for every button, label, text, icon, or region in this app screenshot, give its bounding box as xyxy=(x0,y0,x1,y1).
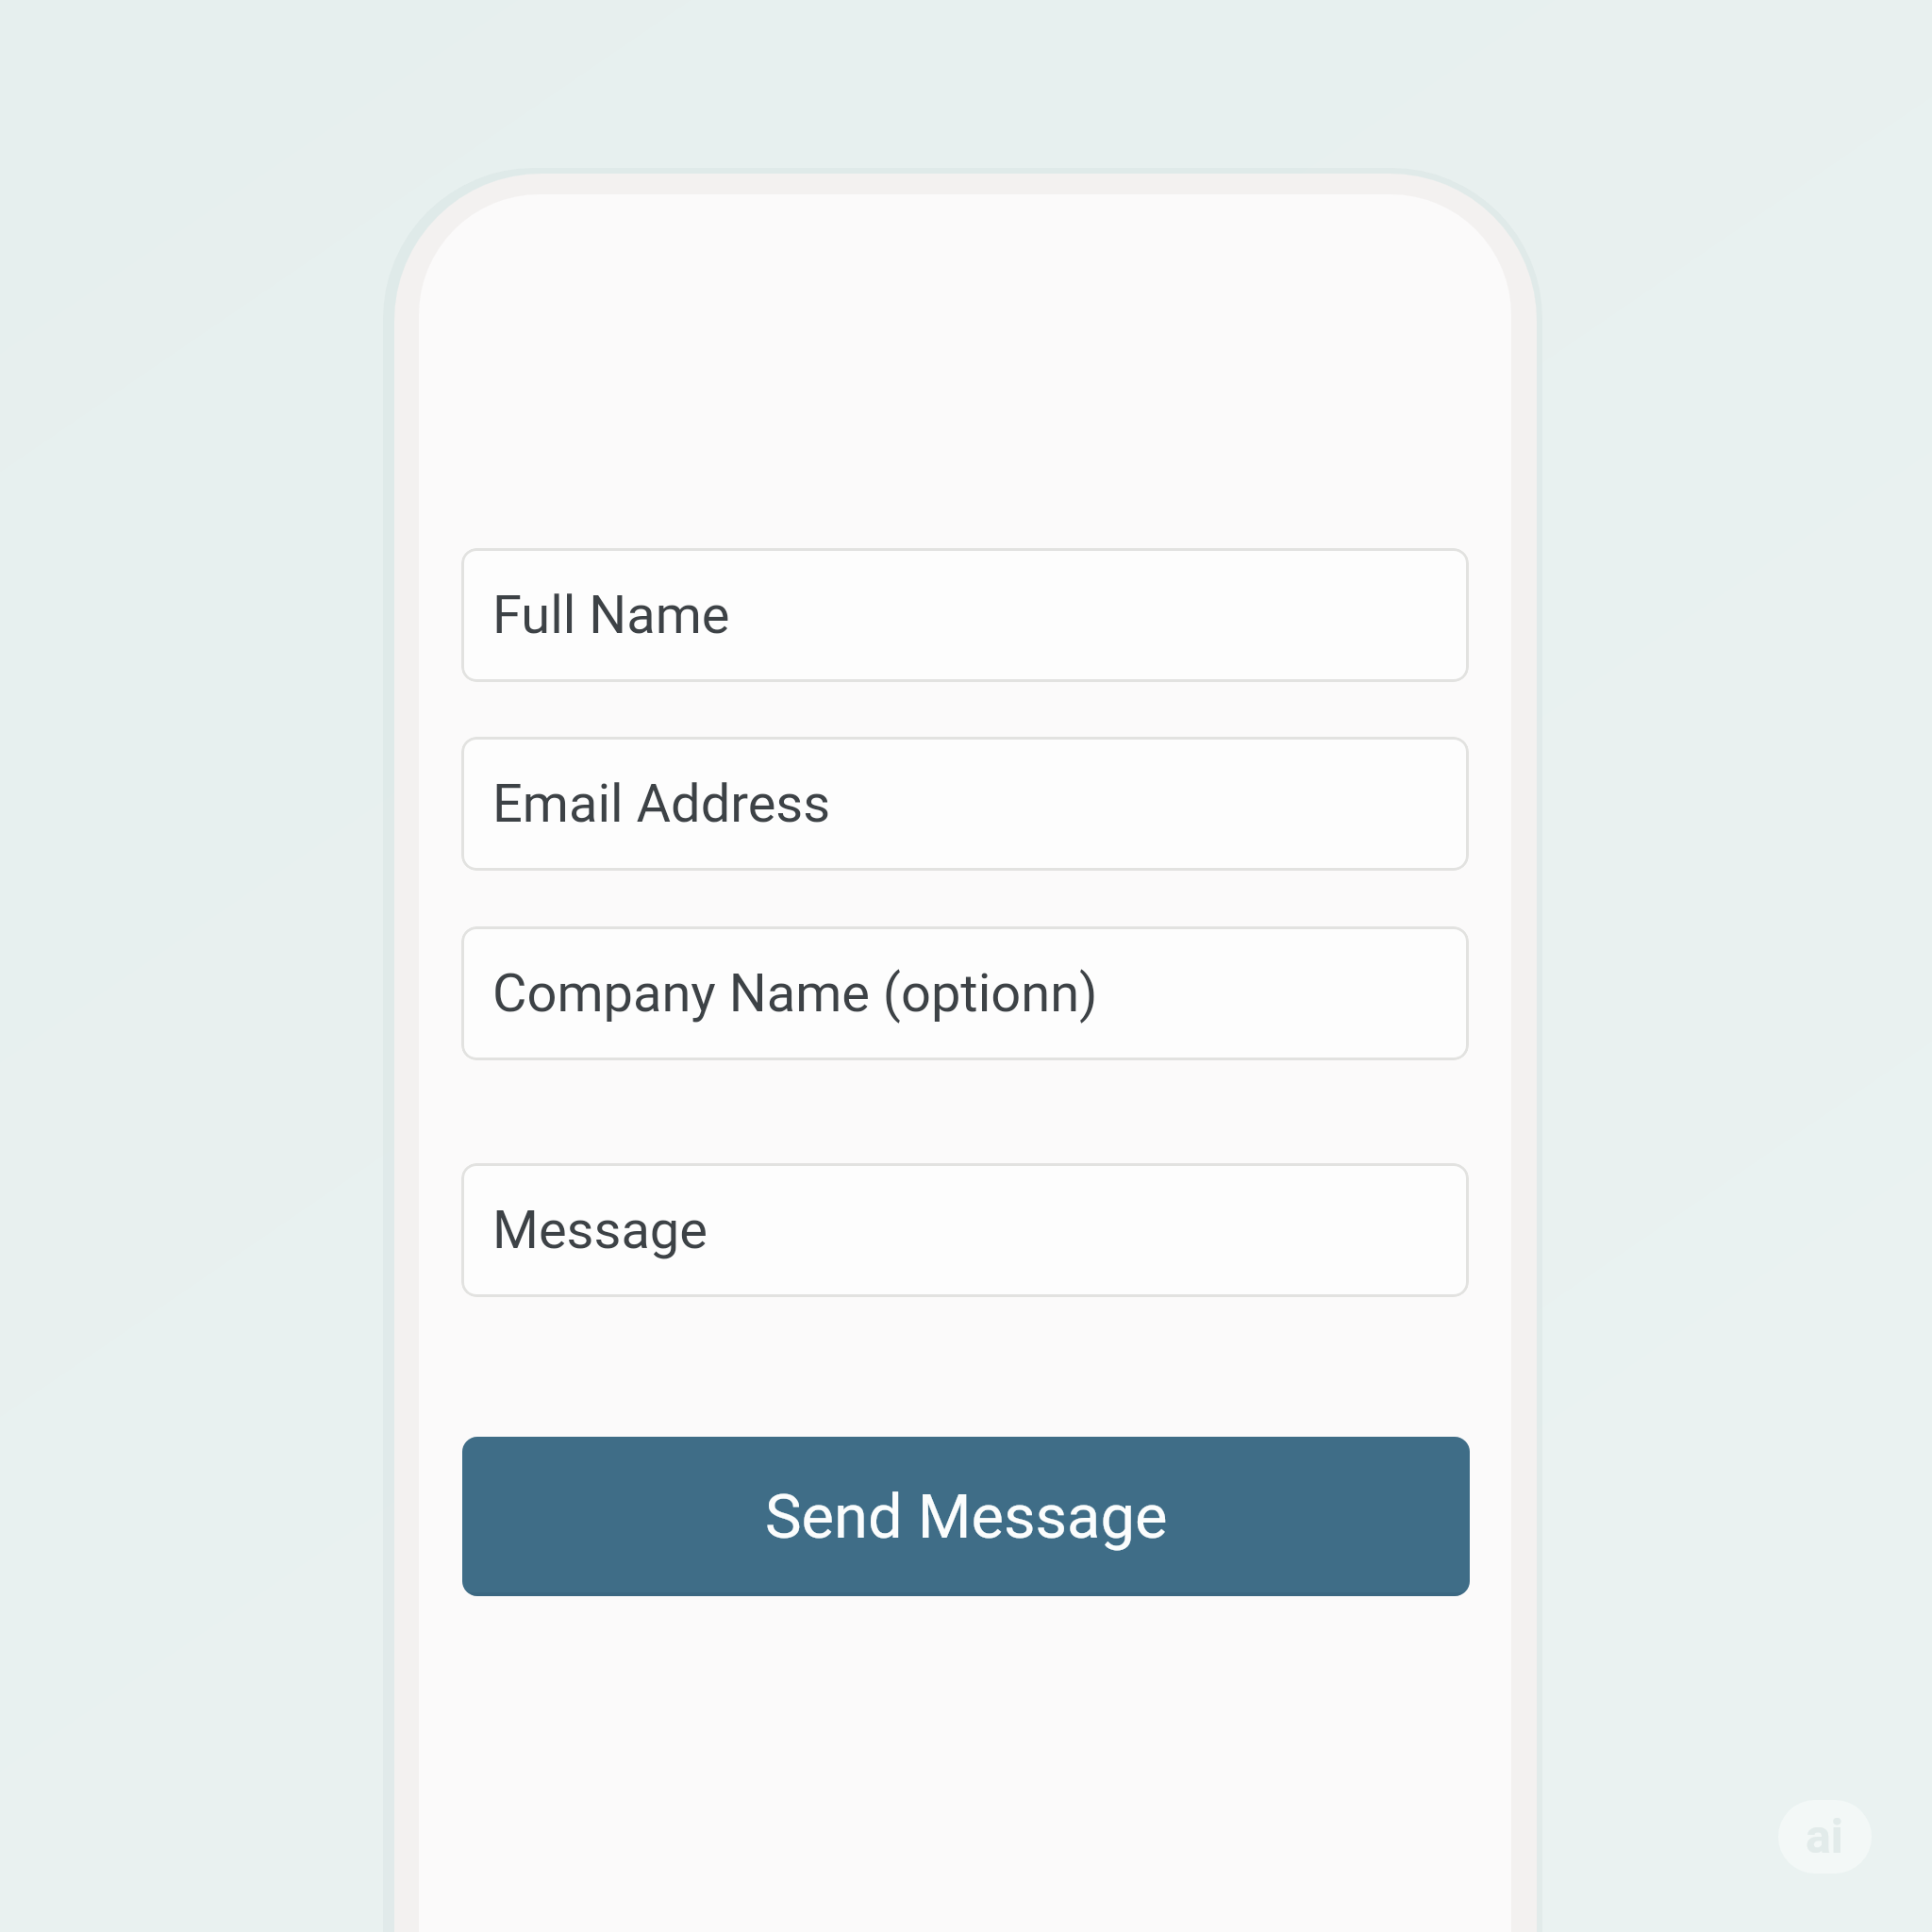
button[interactable]: Full Name xyxy=(461,548,1469,682)
staticText: Email Address xyxy=(492,773,831,835)
button[interactable]: Send Message xyxy=(462,1437,1470,1596)
button[interactable]: Email Address xyxy=(461,737,1469,871)
button[interactable]: Company Name (optionn) xyxy=(461,926,1469,1060)
button[interactable]: Message xyxy=(461,1163,1469,1297)
staticText: ai xyxy=(1806,1809,1844,1865)
staticText: Full Name xyxy=(492,584,730,646)
staticText: Send Message xyxy=(765,1481,1168,1553)
staticText: Message xyxy=(492,1199,708,1261)
staticText: Company Name (optionn) xyxy=(492,962,1098,1024)
